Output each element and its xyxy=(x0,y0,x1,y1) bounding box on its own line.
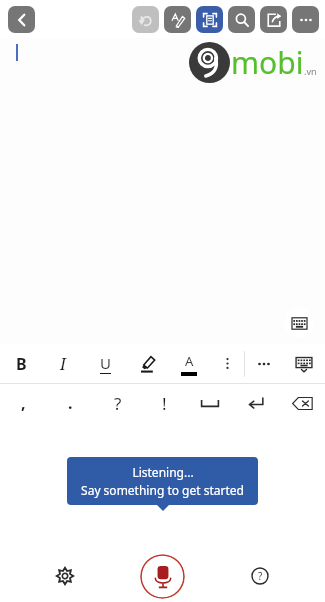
button[interactable]: Highlight xyxy=(126,344,168,383)
staticText: Listening... xyxy=(132,464,194,480)
button[interactable]: Underline xyxy=(84,344,126,383)
staticText: ! xyxy=(162,392,167,415)
staticText: . xyxy=(68,392,73,414)
button[interactable]: Share xyxy=(260,6,287,33)
button[interactable]: Microphone xyxy=(140,554,185,599)
button[interactable]: Italic xyxy=(42,344,84,383)
button[interactable]: Space xyxy=(187,384,233,422)
staticText: U xyxy=(100,353,111,373)
button[interactable]: Help xyxy=(243,559,277,593)
staticText: A xyxy=(185,352,194,370)
button[interactable]: More options xyxy=(292,6,319,33)
button[interactable]: Layout xyxy=(196,6,223,33)
button[interactable]: Exclamation mark xyxy=(141,384,187,422)
button[interactable]: Show keyboard xyxy=(284,308,314,338)
button[interactable]: Keyboard xyxy=(283,344,325,383)
button[interactable]: Undo xyxy=(132,6,159,33)
button[interactable]: Draw xyxy=(164,6,191,33)
staticText: I xyxy=(60,353,66,375)
button[interactable]: Period xyxy=(47,384,94,422)
staticText: , xyxy=(21,392,26,414)
button[interactable]: More formatting xyxy=(210,344,244,383)
button[interactable]: Search xyxy=(228,6,255,33)
button[interactable]: Comma xyxy=(0,384,47,422)
staticText: Say something to get started xyxy=(81,482,244,498)
staticText: .vn xyxy=(304,65,317,77)
button[interactable]: Font color xyxy=(168,344,210,383)
button[interactable]: More xyxy=(245,344,283,383)
button[interactable]: Question mark xyxy=(94,384,141,422)
button[interactable]: Back xyxy=(8,6,35,33)
staticText: ? xyxy=(258,569,263,583)
button[interactable]: Bold xyxy=(0,344,42,383)
staticText: B xyxy=(16,353,27,375)
staticText: mobi xyxy=(231,42,304,83)
staticText: ? xyxy=(114,392,122,415)
button[interactable]: Backspace xyxy=(279,384,325,422)
button[interactable]: Enter xyxy=(233,384,279,422)
button[interactable]: Settings xyxy=(48,559,82,593)
